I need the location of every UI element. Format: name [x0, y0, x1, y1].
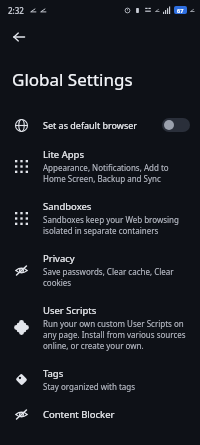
staticText: User Scripts [43, 304, 97, 317]
button[interactable]: Tags [0, 359, 200, 400]
button[interactable]: Back [6, 24, 32, 50]
staticText: Privacy [43, 252, 75, 265]
staticText: Stay organized with tags [43, 381, 136, 392]
staticText: Content Blocker [43, 408, 115, 421]
staticText: Appearance, Notifications, Add to Home S… [43, 162, 169, 184]
button[interactable]: Privacy [0, 244, 200, 296]
button[interactable]: Sandboxes [0, 192, 200, 244]
staticText: Sandboxes [43, 200, 92, 213]
button[interactable]: User Scripts [0, 296, 200, 359]
button[interactable]: Set as default browser [0, 110, 200, 140]
staticText: 2:32 [8, 5, 24, 16]
staticText: Save passwords, Clear cache, Clear cooki… [43, 266, 174, 288]
staticText: Run your own custom User Scripts on any … [43, 318, 186, 351]
staticText: 67 [177, 7, 184, 14]
button[interactable]: Lite Apps [0, 140, 200, 192]
button[interactable]: Content Blocker [0, 400, 200, 429]
staticText: Global Settings [12, 68, 133, 91]
staticText: Lite Apps [43, 148, 84, 161]
staticText: Tags [43, 367, 64, 380]
staticText: Set as default browser [43, 119, 138, 131]
staticText: Sandboxes keep your Web browsing isolate… [43, 214, 179, 236]
